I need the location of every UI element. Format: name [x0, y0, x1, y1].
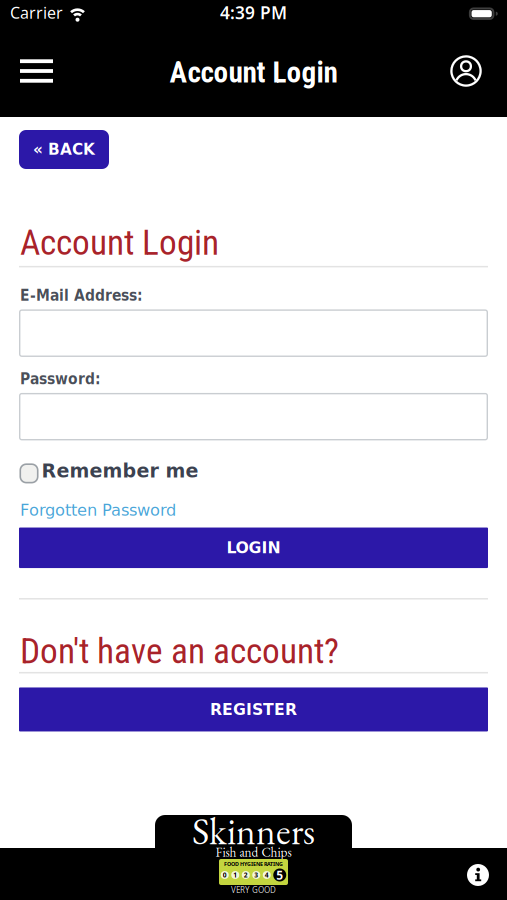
button[interactable]: Menu	[0, 59, 53, 83]
staticText: Account Login	[169, 55, 337, 90]
staticText: Password:	[20, 370, 101, 388]
staticText: REGISTER	[210, 700, 297, 719]
button[interactable]: Info	[467, 864, 489, 886]
staticText: FOOD HYGIENE RATING	[224, 860, 283, 868]
staticText: 2	[244, 871, 248, 879]
button[interactable]: Forgotten Password	[0, 501, 176, 519]
staticText: 4	[265, 871, 269, 879]
staticText: VERY GOOD	[231, 885, 276, 895]
staticText: 0	[223, 871, 227, 879]
staticText: LOGIN	[226, 539, 280, 557]
staticText: Fish and Chips	[215, 843, 291, 861]
button[interactable]: Remember me	[0, 463, 198, 486]
staticText: E-Mail Address:	[20, 286, 143, 304]
staticText: Skinners	[192, 807, 315, 855]
staticText: « BACK	[33, 141, 95, 158]
staticText: Forgotten Password	[20, 501, 176, 519]
staticText: Carrier	[10, 2, 63, 23]
staticText: 3	[254, 871, 258, 879]
staticText: Remember me	[41, 460, 198, 482]
staticText: 4:39 PM	[220, 1, 287, 24]
staticText: 5	[276, 867, 283, 883]
staticText: Don't have an account?	[20, 630, 339, 672]
staticText: 1	[233, 871, 237, 879]
button[interactable]: « BACK	[19, 130, 109, 169]
button[interactable]: Account	[450, 55, 507, 87]
staticText: Account Login	[20, 222, 219, 263]
button[interactable]: LOGIN	[19, 527, 488, 568]
button[interactable]: REGISTER	[19, 687, 488, 731]
